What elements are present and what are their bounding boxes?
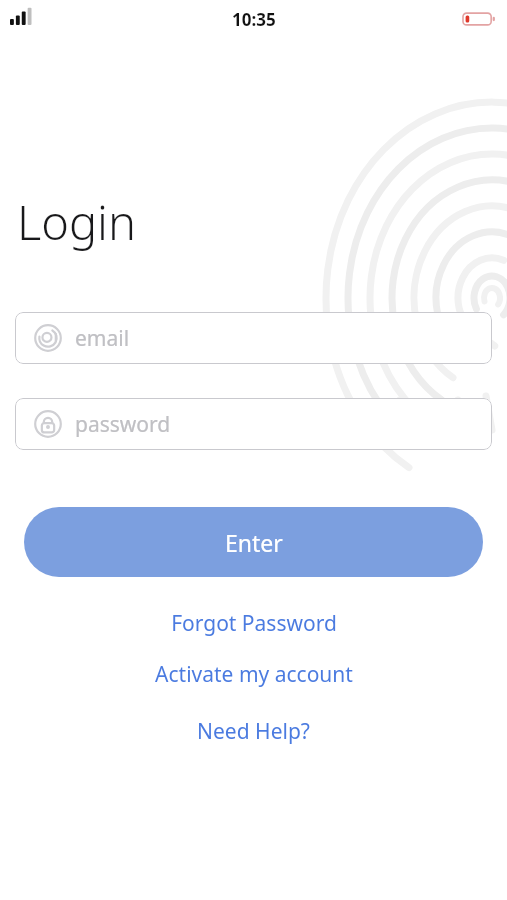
staticText: email — [75, 324, 130, 353]
staticText: Activate my account — [155, 660, 353, 689]
button[interactable]: Forgot Password — [0, 603, 507, 644]
staticText: Need Help? — [197, 717, 310, 746]
button[interactable]: password — [15, 398, 492, 450]
button[interactable]: Activate my account — [0, 654, 507, 695]
staticText: Forgot Password — [171, 609, 337, 638]
button[interactable]: Need Help? — [0, 711, 507, 752]
staticText: Login — [17, 190, 136, 254]
staticText: Enter — [225, 527, 283, 558]
button[interactable]: email — [15, 312, 492, 364]
staticText: 10:35 — [232, 8, 276, 31]
button[interactable]: Enter — [24, 507, 483, 577]
staticText: password — [75, 410, 171, 439]
